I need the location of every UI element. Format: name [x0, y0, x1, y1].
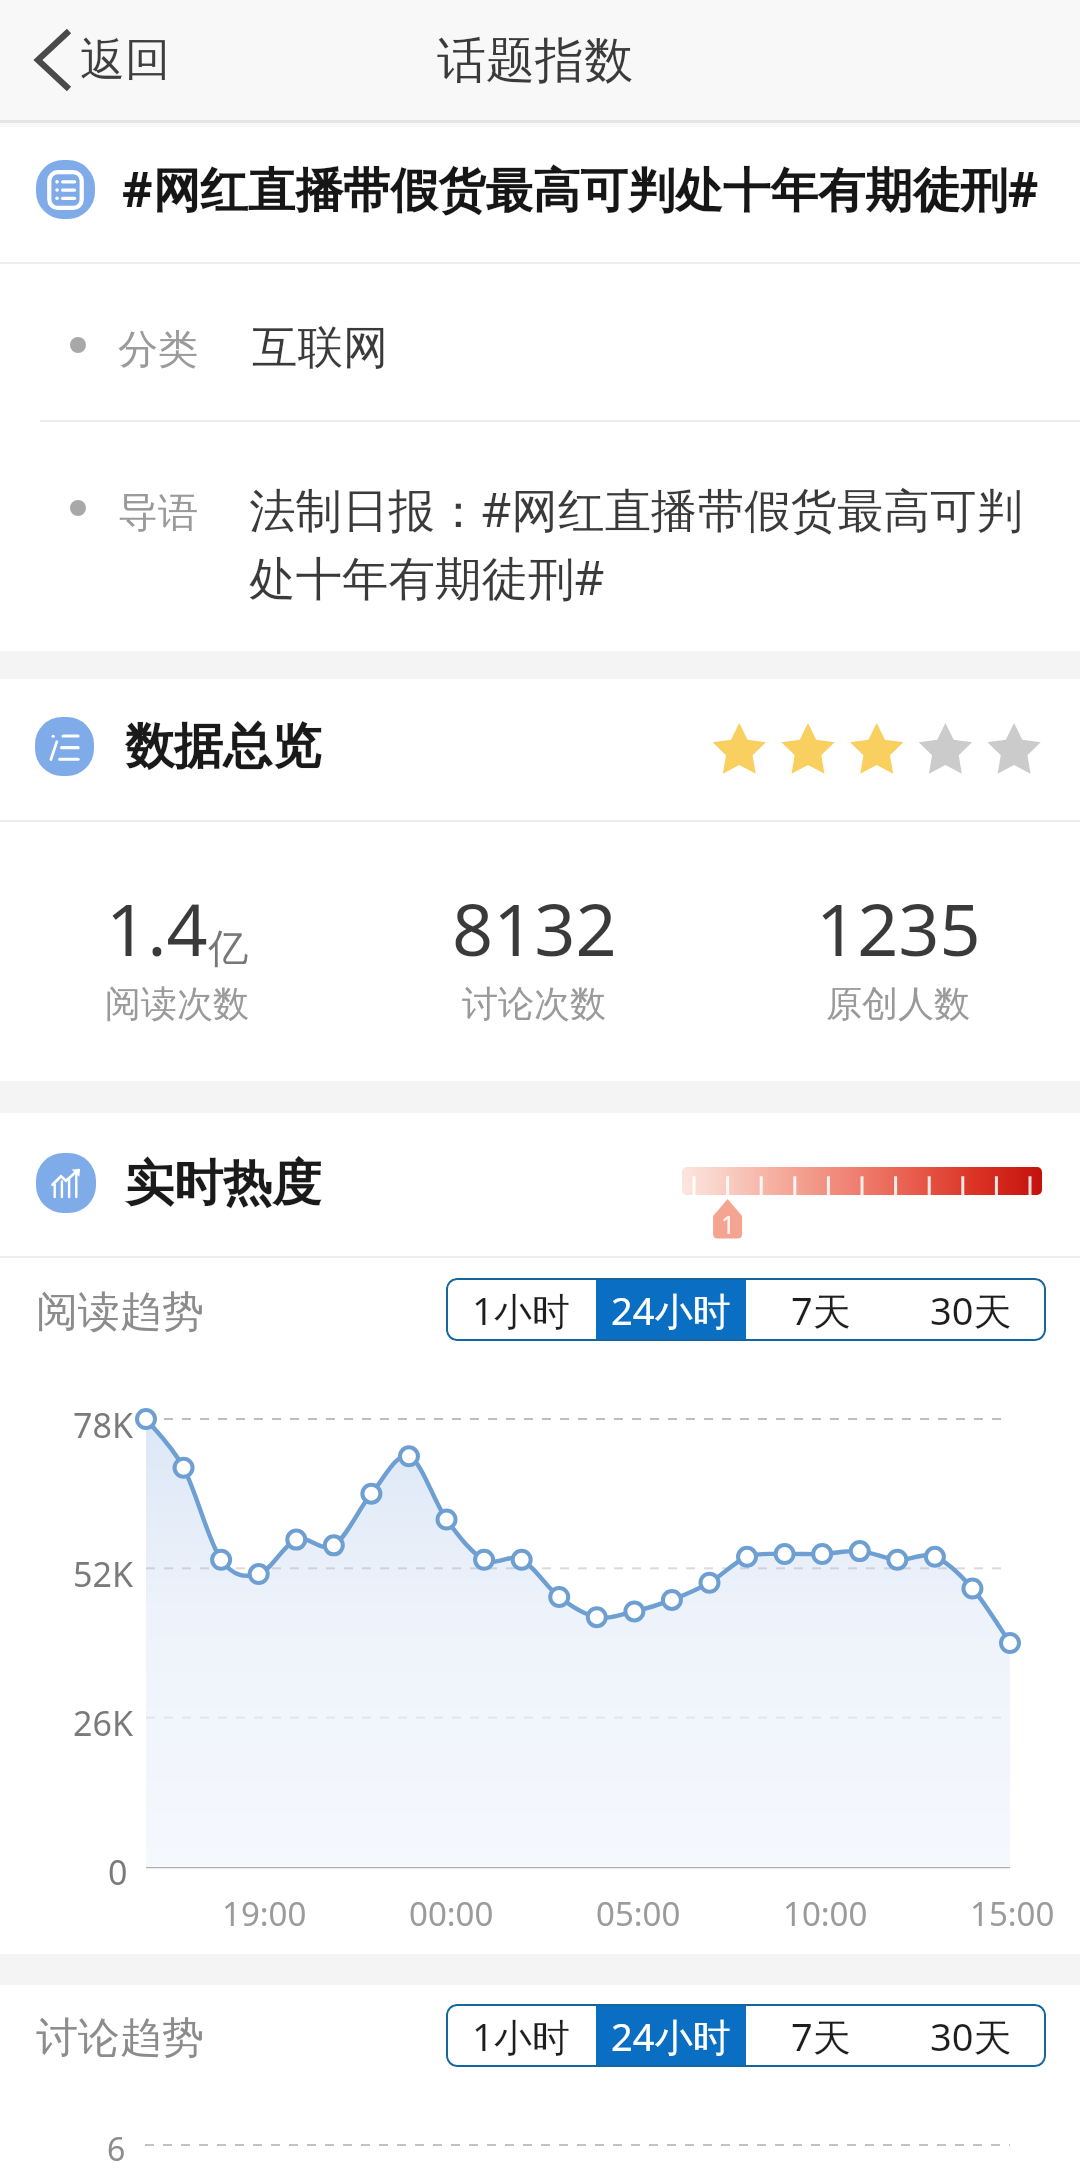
staticText: 30天 [930, 1284, 1012, 1336]
staticText: 1.4 [106, 879, 208, 977]
button[interactable]: 1小时 [446, 1278, 596, 1341]
button[interactable] [0, 120, 1080, 259]
staticText: 互联网 [252, 319, 389, 376]
staticText: 15:00 [970, 1891, 1055, 1936]
staticText: 0 [108, 1849, 128, 1895]
staticText: 19:00 [222, 1891, 307, 1936]
staticText: 返回 [80, 32, 170, 89]
staticText: 30天 [930, 2010, 1012, 2062]
button[interactable]: 7天 [746, 2004, 896, 2067]
staticText: 1235 [816, 879, 981, 977]
button[interactable]: 24小时 [596, 1278, 746, 1341]
staticText: 讨论次数 [462, 981, 606, 1026]
staticText: 26K [73, 1700, 133, 1746]
staticText: 1小时 [472, 1284, 570, 1336]
button[interactable]: 30天 [896, 2004, 1046, 2067]
staticText: 1 [721, 1207, 736, 1241]
staticText: 7天 [791, 2010, 851, 2062]
staticText: 实时热度 [125, 1153, 321, 1215]
staticText: 导语 [118, 487, 198, 537]
staticText: 52K [73, 1551, 133, 1597]
staticText: 数据总览 [125, 716, 321, 778]
staticText: 05:00 [596, 1891, 681, 1936]
staticText: 00:00 [409, 1891, 494, 1936]
staticText: 6 [107, 2127, 126, 2171]
staticText: 8132 [452, 879, 617, 977]
staticText: 阅读次数 [105, 981, 249, 1026]
staticText: 78K [73, 1402, 133, 1448]
staticText: 10:00 [783, 1891, 868, 1936]
staticText: 24小时 [611, 2010, 731, 2062]
button[interactable]: 1小时 [446, 2004, 596, 2067]
staticText: 7天 [791, 1284, 851, 1336]
staticText: 阅读趋势 [36, 1286, 204, 1339]
staticText: 讨论趋势 [36, 2012, 204, 2065]
staticText: 原创人数 [826, 981, 970, 1026]
button[interactable]: 24小时 [596, 2004, 746, 2067]
button[interactable]: 7天 [746, 1278, 896, 1341]
staticText: 分类 [118, 324, 198, 374]
staticText: 24小时 [611, 1284, 731, 1336]
staticText: 亿 [208, 923, 248, 973]
button[interactable]: 返回 Back [20, 18, 188, 102]
staticText: 话题指数 [437, 30, 633, 92]
staticText: 1小时 [472, 2010, 570, 2062]
staticText: #网红直播带假货最高可判处十年有期徒刑# [122, 156, 1039, 221]
staticText: 法制日报：#网红直播带假货最高可判处十年有期徒刑# [249, 477, 1049, 609]
button[interactable]: 30天 [896, 1278, 1046, 1341]
